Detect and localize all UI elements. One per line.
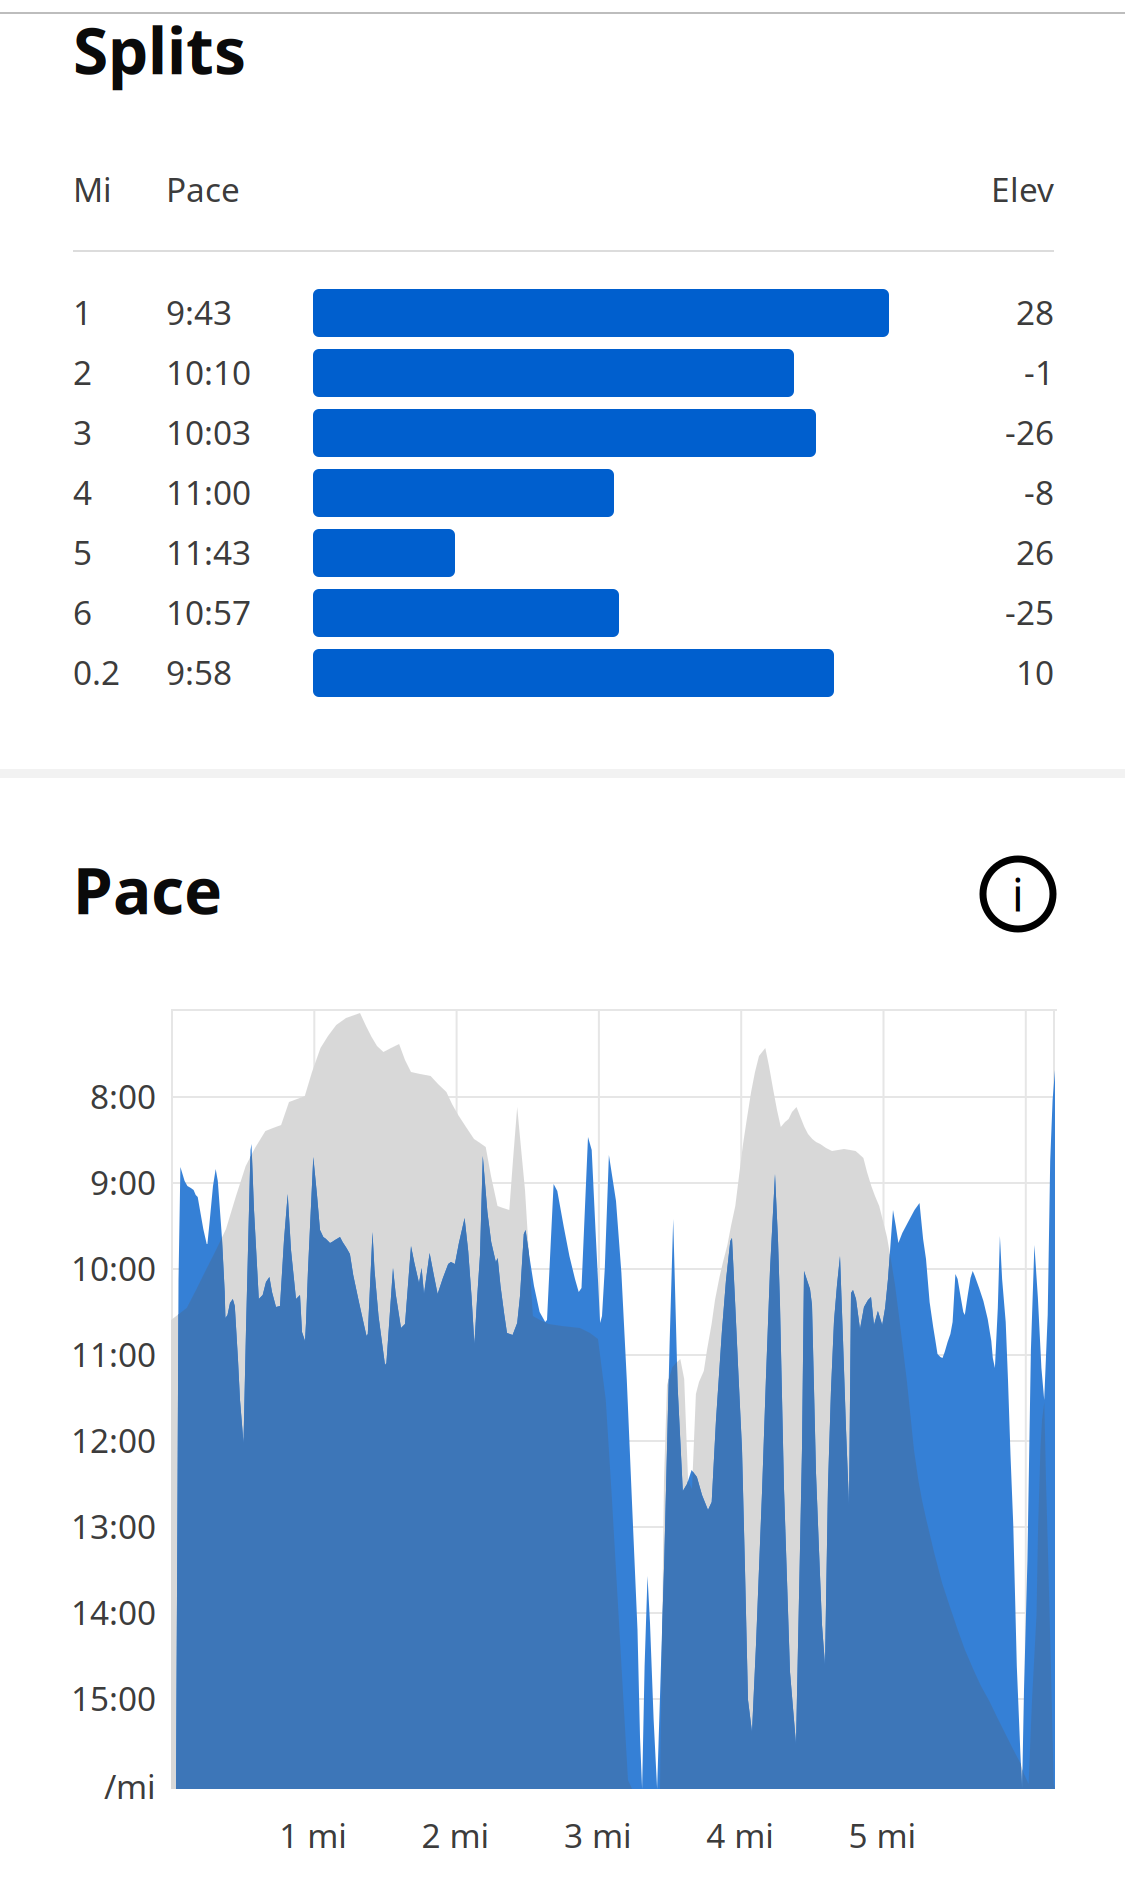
staticText: 9:43	[166, 290, 232, 334]
staticText: 2	[73, 350, 92, 394]
button[interactable]: About pace chart	[975, 851, 1061, 937]
staticText: 12:00	[71, 1418, 156, 1462]
staticText: Splits	[73, 7, 246, 92]
staticText: 9:58	[166, 650, 232, 694]
staticText: Pace	[73, 847, 222, 932]
staticText: 6	[73, 590, 92, 634]
staticText: 13:00	[71, 1504, 156, 1548]
staticText: 10:03	[166, 410, 251, 454]
staticText: -1	[1024, 350, 1054, 394]
staticText: Mi	[73, 167, 112, 211]
staticText: 3 mi	[564, 1813, 632, 1857]
staticText: 5 mi	[848, 1813, 916, 1857]
staticText: /mi	[104, 1764, 156, 1808]
staticText: 10:57	[166, 590, 251, 634]
staticText: 4 mi	[706, 1813, 774, 1857]
staticText: -25	[1005, 590, 1054, 634]
staticText: 15:00	[71, 1676, 156, 1720]
staticText: 1	[73, 290, 92, 334]
staticText: 14:00	[71, 1590, 156, 1634]
staticText: 5	[73, 530, 92, 574]
staticText: 11:00	[71, 1332, 156, 1376]
staticText: 10	[1016, 650, 1054, 694]
staticText: 26	[1016, 530, 1054, 574]
staticText: 2 mi	[422, 1813, 490, 1857]
staticText: Pace	[166, 167, 240, 211]
staticText: 10:10	[166, 350, 251, 394]
staticText: 0.2	[73, 650, 120, 694]
staticText: 11:43	[166, 530, 251, 574]
staticText: 4	[73, 470, 92, 514]
staticText: Elev	[991, 167, 1054, 211]
staticText: 1 mi	[279, 1813, 347, 1857]
staticText: i	[1012, 864, 1024, 924]
staticText: 8:00	[90, 1074, 156, 1118]
staticText: 11:00	[166, 470, 251, 514]
staticText: -8	[1024, 470, 1054, 514]
staticText: 28	[1016, 290, 1054, 334]
staticText: -26	[1005, 410, 1054, 454]
staticText: 3	[73, 410, 92, 454]
staticText: 10:00	[71, 1246, 156, 1290]
staticText: 9:00	[90, 1160, 156, 1204]
